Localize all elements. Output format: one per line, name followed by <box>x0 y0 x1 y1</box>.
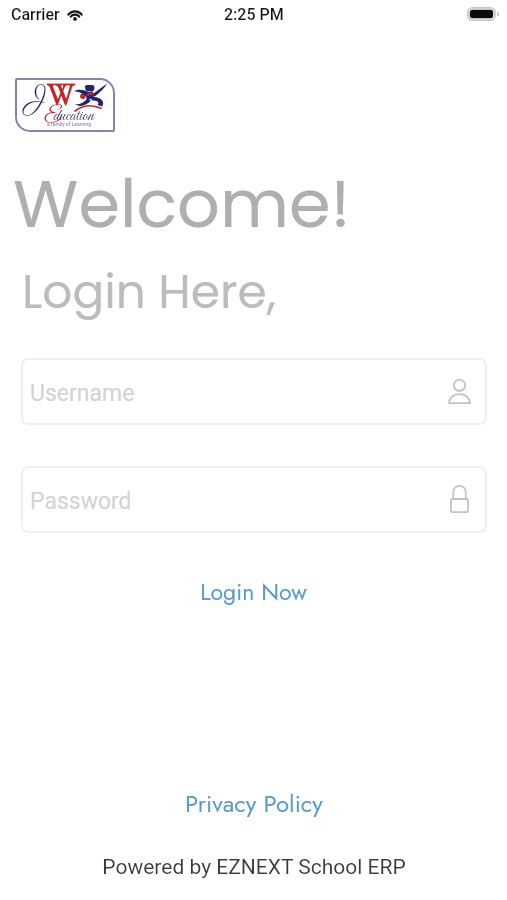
staticText: Login Here, <box>22 259 276 325</box>
staticText: Carrier <box>11 5 60 24</box>
staticText: Password <box>30 488 132 515</box>
staticText: W <box>47 75 75 114</box>
staticText: ducation <box>53 106 94 127</box>
other: Battery <box>467 7 499 21</box>
button[interactable]: J <box>15 78 115 132</box>
staticText: E <box>44 104 62 130</box>
staticText: a family of Learning <box>47 121 91 127</box>
staticText: Username <box>30 380 135 407</box>
button[interactable]: Username <box>21 358 487 425</box>
staticText: Login Now <box>200 575 307 608</box>
other: Password <box>450 485 469 513</box>
button[interactable]: Password <box>21 466 487 533</box>
button[interactable]: Privacy Policy <box>0 784 507 822</box>
staticText: Powered by EZNEXT School ERP <box>102 855 406 880</box>
staticText: J <box>28 78 47 118</box>
other: Wi-Fi <box>66 7 84 21</box>
button[interactable]: Login Now <box>0 572 507 610</box>
other: Username <box>448 379 471 404</box>
staticText: 2:25 PM <box>224 5 284 24</box>
staticText: Privacy Policy <box>185 786 323 821</box>
staticText: Welcome! <box>13 157 351 251</box>
